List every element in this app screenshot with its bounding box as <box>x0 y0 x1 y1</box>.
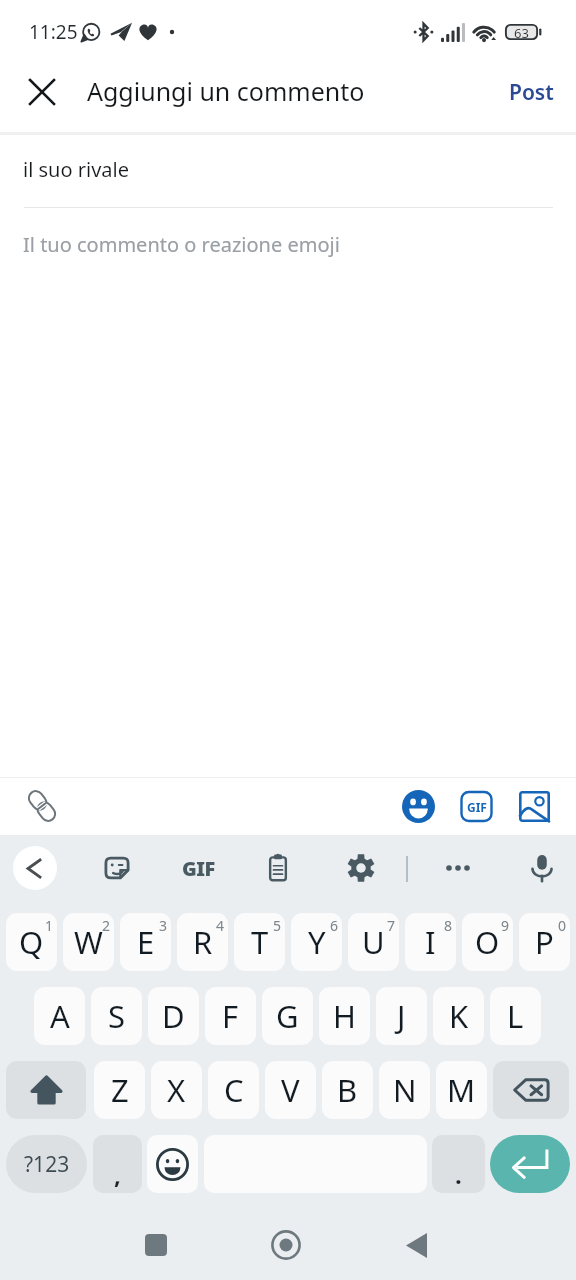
button[interactable]: Post <box>492 68 571 117</box>
button[interactable]: A <box>34 987 85 1045</box>
button[interactable]: GIF <box>453 783 499 829</box>
staticText: O <box>475 921 500 963</box>
staticText: K <box>449 995 469 1037</box>
staticText: J <box>397 995 406 1037</box>
staticText: V <box>281 1069 300 1111</box>
staticText: H <box>333 995 356 1037</box>
staticText: 63 <box>514 24 529 40</box>
button[interactable]: K <box>433 987 484 1045</box>
button[interactable]: Emoji <box>395 783 441 829</box>
button[interactable]: Q <box>6 913 57 971</box>
staticText: L <box>507 995 524 1037</box>
button[interactable]: H <box>319 987 370 1045</box>
staticText: M <box>447 1069 476 1111</box>
button[interactable]: U <box>348 913 399 971</box>
staticText: GIF <box>182 855 215 882</box>
staticText: N <box>393 1069 417 1111</box>
staticText: . <box>455 1158 462 1191</box>
button[interactable]: Home <box>254 1213 318 1277</box>
staticText: W <box>74 921 103 963</box>
staticText: I <box>425 921 436 963</box>
button[interactable]: B <box>322 1061 373 1119</box>
button[interactable]: Keyboard option <box>519 845 565 891</box>
button[interactable]: Keyboard option <box>255 845 301 891</box>
button[interactable]: I <box>405 913 456 971</box>
button[interactable]: Shift <box>6 1061 86 1119</box>
button[interactable]: M <box>436 1061 487 1119</box>
button[interactable]: Attach link <box>19 783 65 829</box>
staticText: R <box>193 921 213 963</box>
button[interactable]: F <box>205 987 256 1045</box>
staticText: Z <box>111 1069 129 1111</box>
staticText: 9 <box>501 916 510 935</box>
button[interactable]: L <box>490 987 541 1045</box>
button[interactable]: Recents <box>124 1213 188 1277</box>
staticText: 11:25 <box>29 19 78 45</box>
button[interactable]: J <box>376 987 427 1045</box>
button[interactable]: W <box>63 913 114 971</box>
button[interactable]: Enter <box>490 1135 570 1193</box>
staticText: Post <box>509 78 554 107</box>
staticText: 5 <box>273 916 282 935</box>
staticText: Y <box>308 921 326 963</box>
staticText: Q <box>19 921 44 963</box>
staticText: 8 <box>444 916 453 935</box>
button[interactable]: E <box>120 913 171 971</box>
staticText: 2 <box>102 916 111 935</box>
button[interactable]: Z <box>94 1061 145 1119</box>
staticText: Il tuo commento o reazione emoji <box>23 231 340 258</box>
staticText: E <box>137 921 155 963</box>
staticText: GIF <box>467 799 487 815</box>
button[interactable]: Keyboard option <box>94 845 140 891</box>
staticText: 3 <box>159 916 168 935</box>
button[interactable]: . <box>432 1135 485 1193</box>
button[interactable]: Keyboard option <box>338 845 384 891</box>
button[interactable]: GIF <box>175 845 221 891</box>
button[interactable]: Image <box>511 783 557 829</box>
staticText: U <box>362 921 385 963</box>
button[interactable]: R <box>177 913 228 971</box>
staticText: , <box>114 1158 121 1191</box>
button[interactable]: Backspace <box>493 1061 569 1119</box>
button[interactable]: Back <box>13 846 57 890</box>
button[interactable]: N <box>379 1061 430 1119</box>
button[interactable]: D <box>148 987 199 1045</box>
staticText: 7 <box>387 916 396 935</box>
staticText: A <box>50 995 70 1037</box>
button[interactable]: X <box>151 1061 202 1119</box>
button[interactable]: C <box>208 1061 259 1119</box>
staticText: 1 <box>45 916 54 935</box>
staticText: 6 <box>330 916 339 935</box>
staticText: 4 <box>216 916 225 935</box>
staticText: S <box>108 995 126 1037</box>
staticText: il suo rivale <box>23 156 129 183</box>
button[interactable]: Back <box>384 1213 448 1277</box>
button[interactable]: Emoji <box>147 1135 198 1193</box>
staticText: D <box>162 995 185 1037</box>
staticText: P <box>535 921 554 963</box>
staticText: C <box>224 1069 244 1111</box>
button[interactable]: ?123 <box>6 1135 87 1193</box>
button[interactable]: S <box>91 987 142 1045</box>
staticText: X <box>167 1069 186 1111</box>
staticText: ?123 <box>24 1150 70 1179</box>
staticText: Aggiungi un commento <box>87 74 365 108</box>
staticText: B <box>337 1069 358 1111</box>
staticText: 0 <box>558 916 567 935</box>
button[interactable]: O <box>462 913 513 971</box>
button[interactable]: P <box>519 913 570 971</box>
button[interactable]: Y <box>291 913 342 971</box>
staticText: F <box>222 995 239 1037</box>
staticText: T <box>251 921 269 963</box>
button[interactable]: Keyboard option <box>435 845 481 891</box>
button[interactable]: , <box>93 1135 142 1193</box>
button[interactable]: T <box>234 913 285 971</box>
button[interactable]: Close <box>14 64 70 120</box>
button[interactable]: V <box>265 1061 316 1119</box>
staticText: G <box>276 995 299 1037</box>
button[interactable]: G <box>262 987 313 1045</box>
